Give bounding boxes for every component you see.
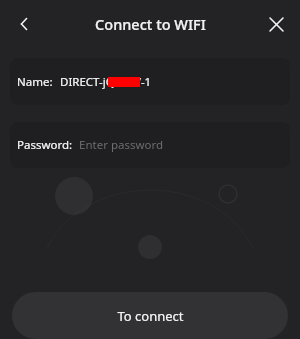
button[interactable]: To connect	[12, 292, 288, 339]
button[interactable]: Name:	[10, 58, 290, 105]
staticText: Password:	[17, 137, 73, 153]
staticText: To connect	[117, 307, 184, 325]
staticText: Name:	[17, 74, 53, 90]
button[interactable]: Close	[258, 6, 294, 42]
staticText: Connect to WIFI	[95, 14, 206, 34]
staticText: Enter password	[79, 137, 164, 153]
staticText: DIRECT-jQ9kZV-1	[60, 74, 152, 90]
button[interactable]: Password:	[10, 122, 290, 168]
button[interactable]: Back	[6, 6, 42, 42]
